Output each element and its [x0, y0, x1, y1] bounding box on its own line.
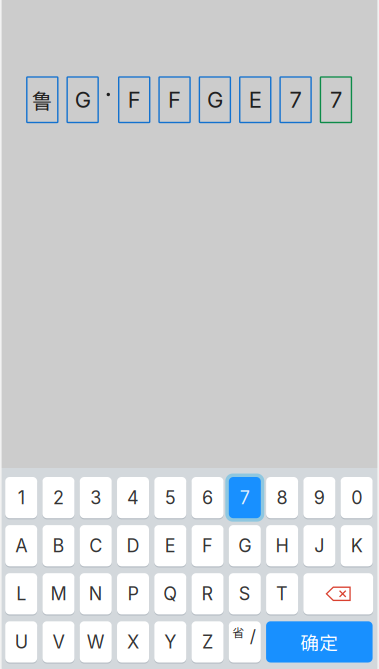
- staticText: F: [202, 535, 213, 557]
- staticText: N: [89, 583, 103, 605]
- button[interactable]: 3: [80, 476, 112, 519]
- staticText: 5: [165, 487, 176, 508]
- button[interactable]: V: [42, 620, 74, 664]
- staticText: C: [89, 535, 102, 557]
- button[interactable]: K: [341, 524, 373, 567]
- button[interactable]: 7: [320, 77, 351, 122]
- staticText: 3: [90, 487, 101, 508]
- staticText: Z: [202, 631, 213, 653]
- button[interactable]: W: [80, 620, 112, 664]
- staticText: P: [127, 583, 138, 605]
- staticText: /: [250, 625, 256, 646]
- staticText: U: [15, 631, 28, 653]
- staticText: S: [239, 583, 251, 605]
- button[interactable]: J: [303, 524, 335, 567]
- button[interactable]: F: [159, 77, 190, 122]
- staticText: E: [249, 86, 262, 113]
- staticText: 4: [127, 487, 139, 508]
- staticText: L: [16, 583, 26, 605]
- staticText: D: [126, 535, 139, 557]
- button[interactable]: [303, 572, 373, 616]
- staticText: X: [127, 631, 139, 653]
- staticText: 鲁: [32, 85, 53, 115]
- staticText: 8: [277, 487, 288, 508]
- button[interactable]: S: [229, 572, 261, 616]
- staticText: 省: [232, 623, 244, 641]
- staticText: 9: [314, 487, 325, 508]
- button[interactable]: 8: [266, 476, 298, 519]
- button[interactable]: N: [80, 572, 112, 616]
- button[interactable]: Z: [192, 620, 224, 664]
- button[interactable]: C: [80, 524, 112, 567]
- button[interactable]: G: [229, 524, 261, 567]
- staticText: 6: [202, 487, 213, 508]
- button[interactable]: M: [42, 572, 74, 616]
- staticText: 0: [351, 487, 362, 508]
- staticText: 7: [330, 86, 342, 113]
- staticText: E: [165, 535, 176, 557]
- staticText: 1: [18, 487, 25, 508]
- staticText: A: [15, 535, 27, 557]
- button[interactable]: P: [117, 572, 149, 616]
- staticText: M: [50, 583, 66, 605]
- staticText: 7: [290, 86, 302, 113]
- staticText: G: [238, 535, 251, 557]
- staticText: H: [276, 535, 289, 557]
- staticText: F: [128, 86, 141, 113]
- staticText: G: [75, 86, 91, 113]
- button[interactable]: 2: [42, 476, 74, 519]
- staticText: Q: [163, 583, 177, 605]
- button[interactable]: 0: [341, 476, 373, 519]
- button[interactable]: R: [192, 572, 224, 616]
- staticText: 确定: [300, 628, 338, 655]
- button[interactable]: 鲁: [27, 77, 58, 122]
- button[interactable]: 9: [303, 476, 335, 519]
- staticText: V: [52, 631, 64, 653]
- button[interactable]: E: [154, 524, 186, 567]
- staticText: K: [351, 535, 363, 557]
- button[interactable]: 1: [5, 476, 37, 519]
- button[interactable]: L: [5, 572, 37, 616]
- button[interactable]: G: [67, 77, 98, 122]
- staticText: F: [168, 86, 181, 113]
- staticText: 7: [240, 487, 250, 508]
- button[interactable]: A: [5, 524, 37, 567]
- button[interactable]: X: [117, 620, 149, 664]
- button[interactable]: U: [5, 620, 37, 664]
- button[interactable]: F: [119, 77, 150, 122]
- button[interactable]: H: [266, 524, 298, 567]
- button[interactable]: 7: [280, 77, 311, 122]
- button[interactable]: 4: [117, 476, 149, 519]
- button[interactable]: D: [117, 524, 149, 567]
- button[interactable]: E: [240, 77, 271, 122]
- button[interactable]: G: [199, 77, 230, 122]
- staticText: T: [276, 583, 288, 605]
- button[interactable]: 6: [192, 476, 224, 519]
- staticText: 2: [53, 487, 64, 508]
- button[interactable]: 5: [154, 476, 186, 519]
- button[interactable]: B: [42, 524, 74, 567]
- button[interactable]: 省: [229, 620, 261, 664]
- staticText: B: [52, 535, 64, 557]
- button[interactable]: 确定: [266, 621, 373, 662]
- staticText: G: [207, 86, 223, 113]
- button[interactable]: T: [266, 572, 298, 616]
- button[interactable]: Q: [154, 572, 186, 616]
- staticText: J: [314, 535, 324, 557]
- button[interactable]: F: [192, 524, 224, 567]
- staticText: W: [87, 631, 105, 653]
- button[interactable]: Y: [154, 620, 186, 664]
- staticText: R: [202, 583, 214, 605]
- staticText: Y: [164, 631, 176, 653]
